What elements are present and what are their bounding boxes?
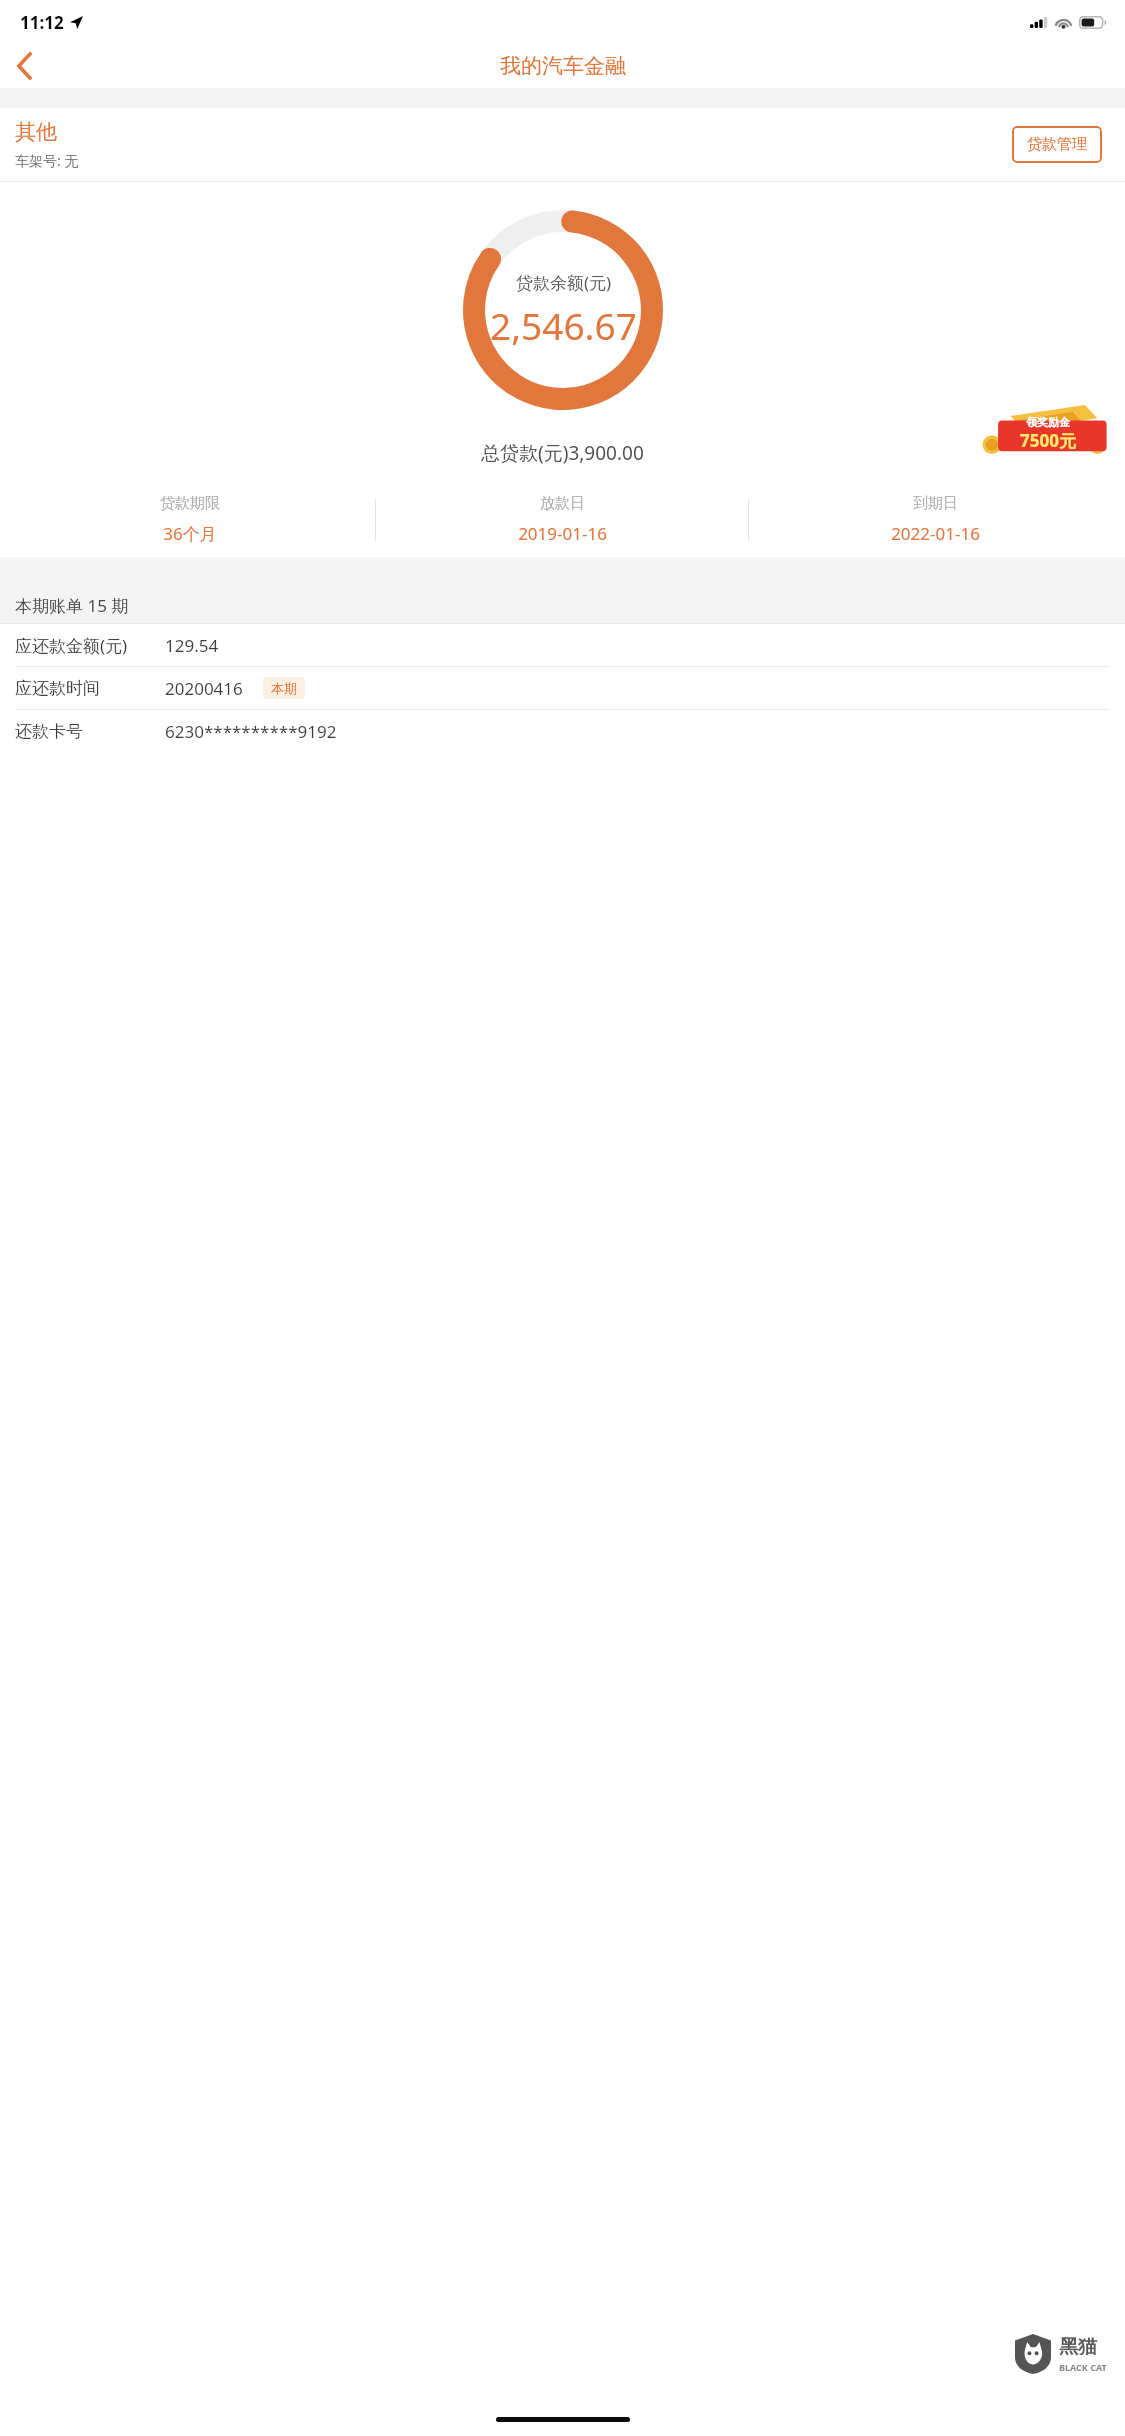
- staticText: 我的汽车金融: [500, 53, 626, 79]
- staticText: 还款卡号: [15, 721, 83, 742]
- staticText: 本期: [271, 680, 297, 696]
- button[interactable]: Promotion: [964, 404, 1119, 459]
- staticText: 2019-01-16: [518, 522, 607, 545]
- staticText: 本期账单 15 期: [15, 594, 129, 617]
- staticText: 20200416: [165, 677, 243, 700]
- staticText: 6230**********9192: [165, 720, 337, 743]
- staticText: 车架号: 无: [15, 151, 79, 170]
- button[interactable]: Back: [0, 44, 48, 88]
- button[interactable]: 贷款管理: [1012, 126, 1102, 163]
- staticText: BLACK CAT: [1059, 2361, 1107, 2373]
- staticText: 其他: [15, 119, 57, 145]
- staticText: 贷款余额(元): [516, 271, 612, 294]
- button[interactable]: 应还款金额(元): [0, 624, 1125, 666]
- staticText: 2,546.67: [490, 300, 637, 350]
- staticText: 129.54: [165, 634, 219, 657]
- staticText: 7500元: [1020, 429, 1076, 452]
- staticText: 贷款期限: [160, 494, 220, 513]
- staticText: 应还款金额(元): [15, 634, 128, 657]
- staticText: 贷款管理: [1027, 135, 1087, 154]
- button[interactable]: 应还款时间: [0, 667, 1125, 709]
- staticText: 36个月: [163, 522, 217, 545]
- staticText: 领奖励金: [1026, 415, 1070, 429]
- button[interactable]: 还款卡号: [0, 710, 1125, 752]
- staticText: 2022-01-16: [891, 522, 980, 545]
- staticText: 到期日: [913, 494, 958, 513]
- staticText: 黑猫: [1059, 2335, 1097, 2359]
- staticText: 应还款时间: [15, 678, 100, 699]
- staticText: 总贷款(元)3,900.00: [481, 440, 644, 466]
- staticText: 放款日: [540, 494, 585, 513]
- staticText: 11:12: [20, 11, 64, 34]
